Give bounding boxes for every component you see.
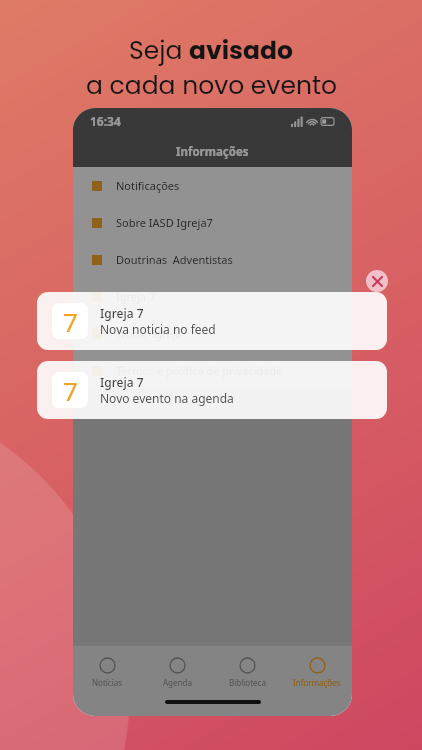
staticText: Informações	[293, 677, 341, 688]
staticText: Nova noticia no feed	[100, 321, 216, 337]
staticText: Notícias	[92, 677, 123, 688]
button[interactable]: 7	[37, 292, 387, 350]
staticText: Agenda	[163, 677, 192, 688]
button[interactable]: Agenda	[142, 646, 212, 698]
staticText: Sobre IASD Igreja7	[116, 215, 213, 230]
staticText: a cada novo evento	[86, 68, 337, 103]
staticText: Igreja 7	[100, 305, 144, 321]
staticText: Seja avisado	[129, 33, 293, 68]
button[interactable]: Igreja 7	[73, 278, 352, 315]
staticText: Termos e política de privacidade	[116, 363, 283, 378]
button[interactable]: Notificações	[73, 167, 352, 204]
button[interactable]: Fechar	[366, 270, 388, 292]
staticText: Igreja 7	[116, 289, 156, 304]
staticText: Doutrinas Adventistas	[116, 252, 233, 267]
staticText: Igreja 7	[100, 374, 144, 390]
button[interactable]: Notícias	[73, 646, 142, 698]
staticText: Novo evento na agenda	[100, 390, 234, 406]
staticText: Informações	[176, 144, 249, 160]
button[interactable]: Informações	[282, 646, 352, 698]
staticText: 7	[63, 304, 78, 339]
button[interactable]: Trocar Igreja	[73, 315, 352, 352]
staticText: 16:34	[90, 113, 121, 129]
staticText: 7	[63, 373, 78, 408]
button[interactable]: Sobre IASD Igreja7	[73, 204, 352, 241]
button[interactable]: Biblioteca	[212, 646, 282, 698]
button[interactable]: 7	[37, 361, 387, 419]
staticText: Biblioteca	[229, 677, 266, 688]
staticText: Trocar Igreja	[116, 326, 182, 341]
button[interactable]: Termos e política de privacidade	[73, 352, 352, 389]
button[interactable]: Doutrinas Adventistas	[73, 241, 352, 278]
staticText: Notificações	[116, 178, 180, 193]
